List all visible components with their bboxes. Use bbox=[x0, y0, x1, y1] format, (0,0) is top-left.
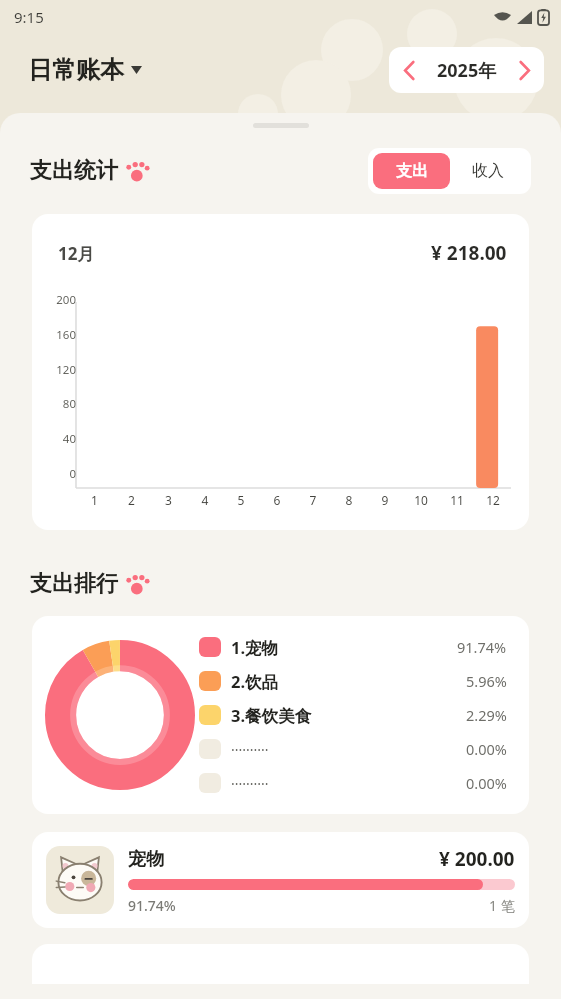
button[interactable]: ·········· bbox=[199, 732, 507, 766]
staticText: 5 bbox=[223, 492, 259, 508]
staticText: 0 bbox=[36, 466, 76, 482]
button[interactable]: 3.餐饮美食 bbox=[199, 698, 507, 732]
staticText: 8 bbox=[331, 492, 367, 508]
staticText: 1.宠物 bbox=[231, 636, 279, 659]
staticText: 收入 bbox=[472, 161, 504, 181]
button[interactable]: 2.饮品 bbox=[199, 664, 507, 698]
staticText: 120 bbox=[36, 362, 76, 378]
button[interactable]: ·········· bbox=[199, 766, 507, 800]
staticText: 10 bbox=[403, 492, 439, 508]
staticText: 支出 bbox=[396, 161, 428, 181]
staticText: 7 bbox=[295, 492, 331, 508]
staticText: 0.00% bbox=[466, 773, 507, 793]
staticText: 160 bbox=[36, 327, 76, 343]
staticText: ·········· bbox=[231, 740, 269, 759]
staticText: 9 bbox=[367, 492, 403, 508]
button[interactable]: Previous year bbox=[389, 50, 429, 90]
staticText: 支出排行 bbox=[30, 570, 118, 598]
button[interactable]: Next year bbox=[504, 50, 544, 90]
staticText: 11 bbox=[439, 492, 475, 508]
button[interactable]: 支出 bbox=[373, 153, 450, 189]
staticText: ·········· bbox=[231, 774, 269, 793]
staticText: 宠物 bbox=[128, 848, 164, 871]
staticText: 4 bbox=[187, 492, 223, 508]
staticText: 6 bbox=[259, 492, 295, 508]
staticText: 3.餐饮美食 bbox=[231, 704, 312, 727]
staticText: 5.96% bbox=[466, 671, 507, 691]
staticText: 12月 bbox=[58, 242, 95, 265]
button[interactable]: 日常账本 bbox=[28, 51, 142, 89]
button[interactable]: 宠物 bbox=[32, 832, 529, 928]
staticText: 3 bbox=[150, 492, 187, 508]
staticText: 91.74% bbox=[457, 637, 507, 657]
staticText: 2025年 bbox=[437, 58, 497, 83]
staticText: 80 bbox=[36, 396, 76, 412]
staticText: 0.00% bbox=[466, 739, 507, 759]
staticText: 2 bbox=[113, 492, 150, 508]
staticText: 1 笔 bbox=[489, 896, 515, 915]
staticText: 9:15 bbox=[14, 7, 44, 27]
staticText: 40 bbox=[36, 431, 76, 447]
button[interactable]: 收入 bbox=[450, 153, 526, 189]
staticText: 日常账本 bbox=[28, 55, 124, 85]
staticText: 2.饮品 bbox=[231, 670, 279, 693]
staticText: ¥ 218.00 bbox=[431, 240, 507, 266]
staticText: 91.74% bbox=[128, 896, 176, 915]
staticText: 2.29% bbox=[466, 705, 507, 725]
staticText: ¥ 200.00 bbox=[439, 846, 515, 872]
staticText: 支出统计 bbox=[30, 157, 118, 185]
staticText: 1 bbox=[76, 492, 113, 508]
staticText: 12 bbox=[475, 492, 511, 508]
staticText: 200 bbox=[36, 292, 76, 308]
button[interactable]: 1.宠物 bbox=[199, 630, 507, 664]
